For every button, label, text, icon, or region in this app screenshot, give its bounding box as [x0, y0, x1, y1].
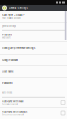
button[interactable]: Configure preference settings: [0, 42, 67, 54]
staticText: User name: [2, 70, 13, 73]
staticText: Sam Tyler <XMail>: [2, 14, 25, 17]
staticText: Platform: [2, 33, 12, 36]
staticText: Sync contacts automatically: [2, 114, 24, 116]
button[interactable]: Auto-sync with contacts: [0, 108, 67, 118]
staticText: Auto-sync with contacts: [2, 110, 27, 113]
staticText: general settings: [2, 25, 16, 27]
button[interactable]: Password: [0, 77, 67, 88]
staticText: Auto-sync with Mail: [2, 100, 24, 103]
button[interactable]: Sam Tyler <XMail>: [0, 11, 67, 22]
staticText: Configure preference settings: [2, 46, 35, 49]
staticText: auto mode: [2, 91, 12, 94]
button[interactable]: Google account: [0, 54, 67, 65]
staticText: Sync mail automatically: [2, 103, 18, 105]
staticText: Google account: [2, 58, 18, 61]
button[interactable]: User name: [0, 66, 67, 77]
staticText: Microsoft: [2, 36, 11, 39]
button[interactable]: Auto-sync with Mail: [0, 97, 67, 107]
button[interactable]: Platform: [0, 30, 67, 41]
staticText: General Settings: [8, 6, 27, 10]
staticText: Your mailbox account: [2, 17, 21, 19]
staticText: Password: [2, 81, 13, 84]
